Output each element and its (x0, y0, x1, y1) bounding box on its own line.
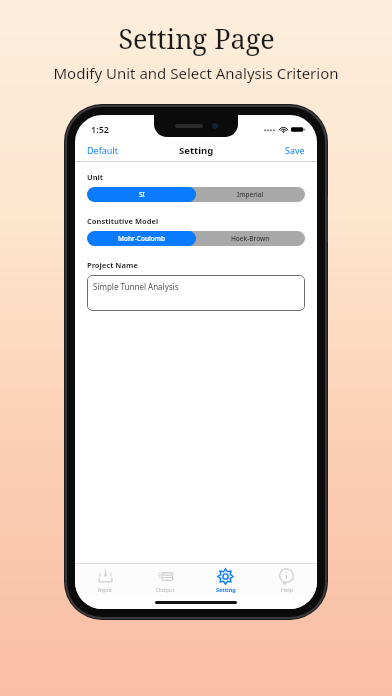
staticText: Default (87, 144, 118, 156)
staticText: Save (285, 144, 305, 156)
button[interactable]: Save (273, 141, 317, 159)
staticText: Imperial (237, 190, 264, 199)
button[interactable]: SI (87, 187, 196, 202)
staticText: 1:52 (91, 123, 109, 135)
button[interactable]: Help (256, 564, 317, 596)
button[interactable]: Default (75, 141, 130, 159)
staticText: Hoek-Brown (231, 234, 270, 243)
staticText: SI (139, 190, 145, 199)
staticText: Unit (87, 172, 104, 182)
staticText: Modify Unit and Select Analysis Criterio… (53, 63, 339, 83)
button[interactable]: Simple Tunnel Analysis (87, 275, 305, 311)
staticText: Constitutive Model (87, 216, 159, 226)
button[interactable]: Imperial (196, 187, 305, 202)
button[interactable]: Setting (195, 564, 256, 596)
staticText: Input (98, 586, 113, 593)
button[interactable]: Output (135, 564, 195, 596)
staticText: Setting (179, 144, 214, 157)
button[interactable]: Hoek-Brown (196, 231, 305, 246)
staticText: Simple Tunnel Analysis (93, 281, 179, 292)
staticText: Mohr-Coulomb (118, 234, 165, 243)
staticText: Project Name (87, 260, 138, 270)
staticText: Setting (216, 586, 236, 593)
button[interactable]: Mohr-Coulomb (87, 231, 196, 246)
staticText: Help (281, 586, 293, 593)
button[interactable]: Input (75, 564, 135, 596)
staticText: Setting Page (118, 20, 275, 57)
staticText: Output (156, 586, 175, 593)
